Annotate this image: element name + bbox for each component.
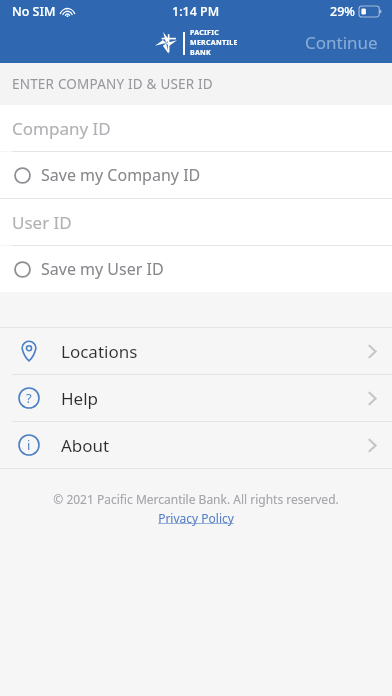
staticText: Continue <box>305 31 378 54</box>
staticText: Help <box>61 387 99 410</box>
button[interactable]: Privacy Policy <box>158 510 234 526</box>
staticText: MERCANTILE <box>190 38 238 48</box>
button[interactable]: Locations <box>0 328 392 374</box>
staticText: Save my Company ID <box>41 164 201 186</box>
staticText: User ID <box>12 211 72 234</box>
staticText: Locations <box>61 340 138 363</box>
staticText: © 2021 Pacific Mercantile Bank. All righ… <box>53 491 339 507</box>
staticText: Save my User ID <box>41 258 164 280</box>
button[interactable]: i <box>0 422 392 468</box>
staticText: About <box>61 434 110 457</box>
staticText: Privacy Policy <box>158 510 234 526</box>
button[interactable]: User ID <box>0 199 392 245</box>
staticText: BANK <box>190 48 212 58</box>
staticText: Company ID <box>12 117 111 140</box>
button[interactable]: Save my Company ID <box>0 152 392 198</box>
button[interactable]: Save my User ID <box>0 246 392 292</box>
button[interactable]: ? <box>0 375 392 421</box>
staticText: 29% <box>330 3 355 20</box>
staticText: ? <box>26 389 32 407</box>
staticText: PACIFIC <box>190 28 220 38</box>
staticText: No SIM <box>12 3 56 20</box>
button[interactable]: Continue <box>291 23 392 62</box>
staticText: 1:14 PM <box>172 3 220 20</box>
staticText: ENTER COMPANY ID & USER ID <box>12 75 213 93</box>
button[interactable]: Company ID <box>0 105 392 151</box>
staticText: i <box>27 436 31 454</box>
